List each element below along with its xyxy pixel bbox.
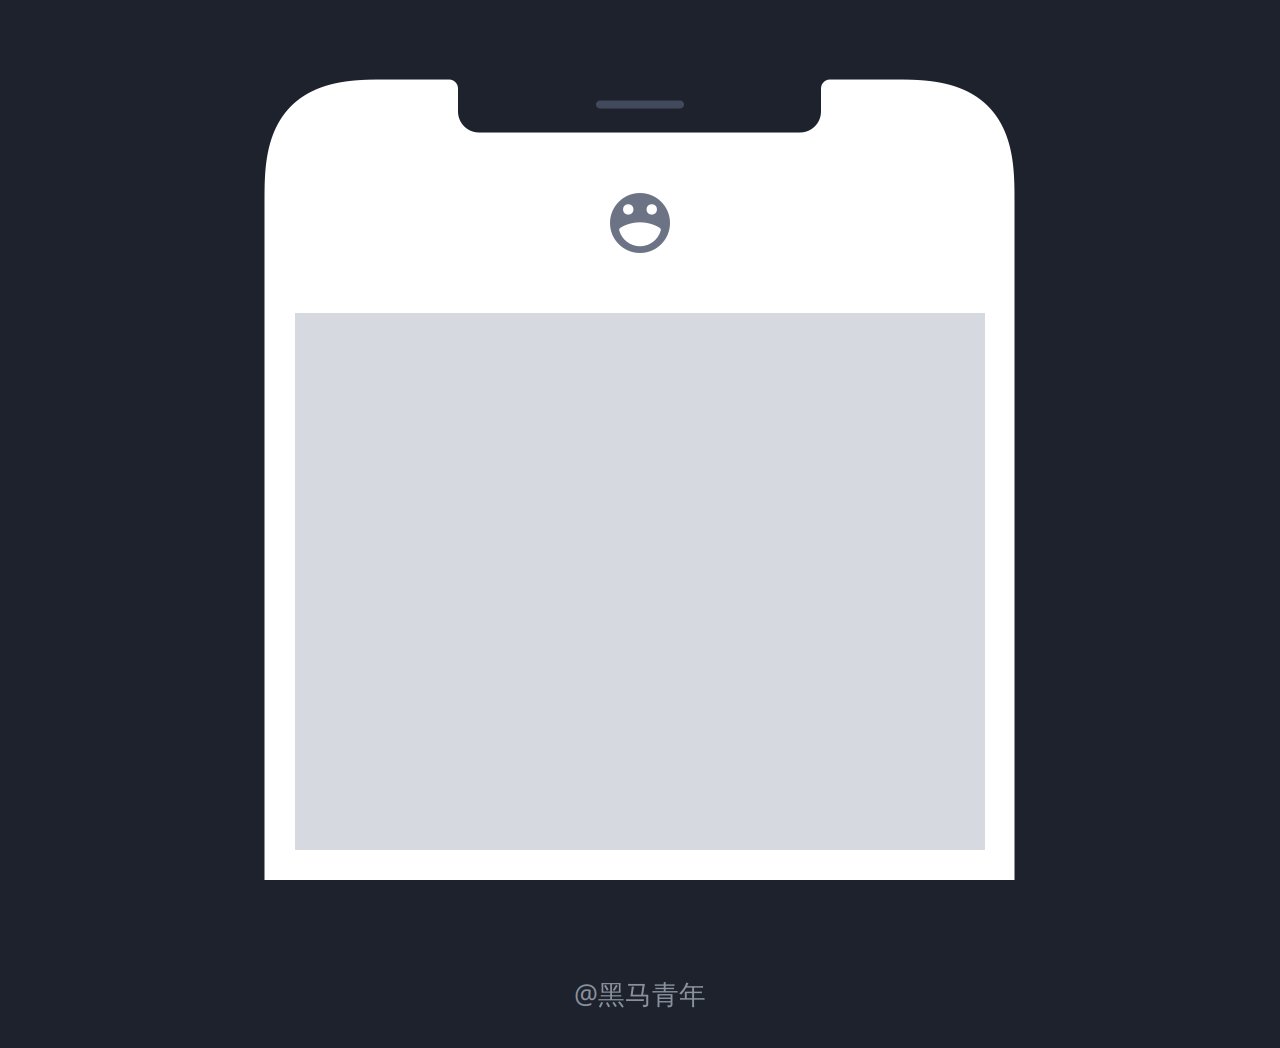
button[interactable]: Profile [610, 193, 670, 253]
staticText: @黑马青年 [574, 976, 706, 1012]
